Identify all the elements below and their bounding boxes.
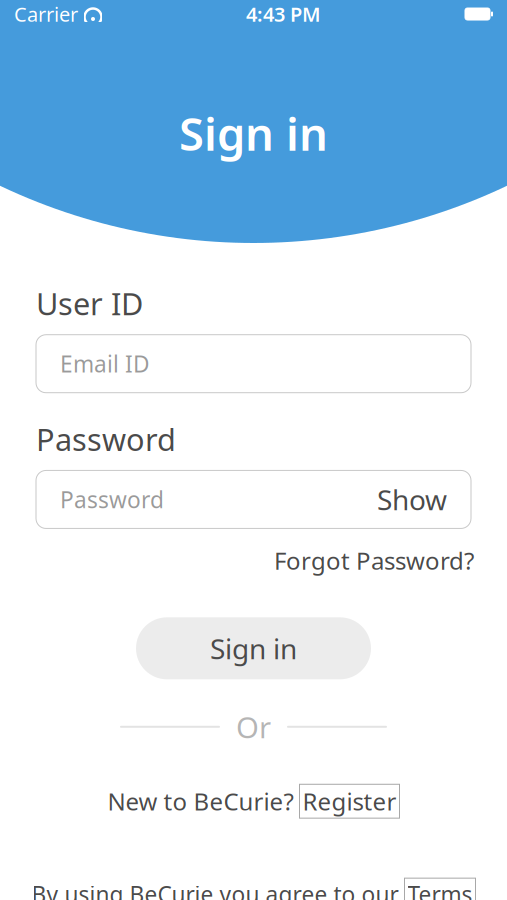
staticText: Password — [60, 484, 164, 514]
staticText: Terms — [407, 879, 472, 900]
button[interactable]: Forgot Password? — [274, 540, 507, 580]
staticText: Register — [302, 785, 396, 817]
staticText: 4:43 PM — [246, 1, 321, 27]
button[interactable]: Sign in — [136, 617, 371, 679]
staticText: User ID — [36, 283, 143, 324]
button[interactable]: Register — [299, 784, 399, 818]
staticText: Or — [236, 707, 271, 746]
button[interactable]: Show — [377, 481, 471, 518]
staticText: Show — [377, 481, 447, 518]
staticText: By using BeCurie you agree to our — [31, 879, 404, 900]
staticText: Email ID — [60, 349, 150, 379]
button[interactable]: Terms — [404, 878, 475, 900]
staticText: New to BeCurie? — [107, 785, 299, 817]
staticText: Sign in — [210, 630, 297, 667]
staticText: Forgot Password? — [274, 544, 474, 576]
staticText: Carrier — [14, 1, 78, 27]
staticText: Password — [36, 419, 176, 459]
staticText: Sign in — [179, 103, 328, 163]
